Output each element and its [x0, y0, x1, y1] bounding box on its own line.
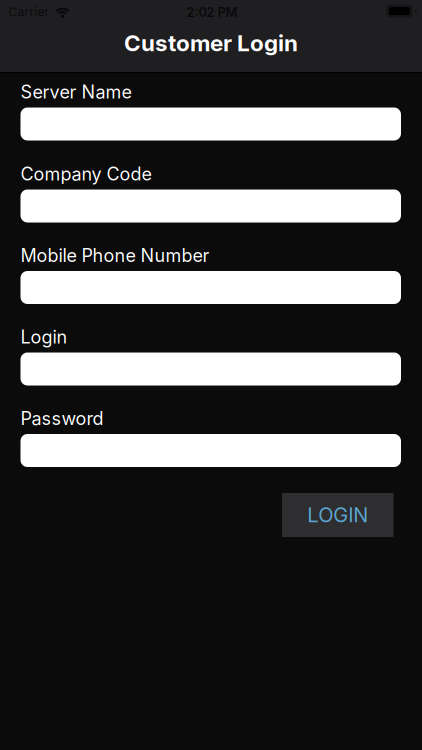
- button[interactable]: LOGIN: [282, 493, 393, 537]
- staticText: Server Name: [20, 81, 131, 103]
- button[interactable]: Mobile Phone Number text field: [20, 271, 401, 304]
- button[interactable]: Company Code text field: [20, 189, 401, 222]
- staticText: Password: [20, 407, 103, 429]
- staticText: Mobile Phone Number: [20, 244, 209, 266]
- staticText: Company Code: [20, 163, 151, 185]
- staticText: LOGIN: [307, 503, 368, 527]
- staticText: Customer Login: [124, 29, 298, 57]
- button[interactable]: Login text field: [20, 352, 401, 385]
- button[interactable]: Server Name text field: [20, 107, 401, 140]
- staticText: Carrier: [8, 4, 49, 19]
- staticText: Login: [20, 326, 67, 348]
- staticText: 2:02 PM: [186, 4, 237, 20]
- button[interactable]: Password text field: [20, 434, 401, 467]
